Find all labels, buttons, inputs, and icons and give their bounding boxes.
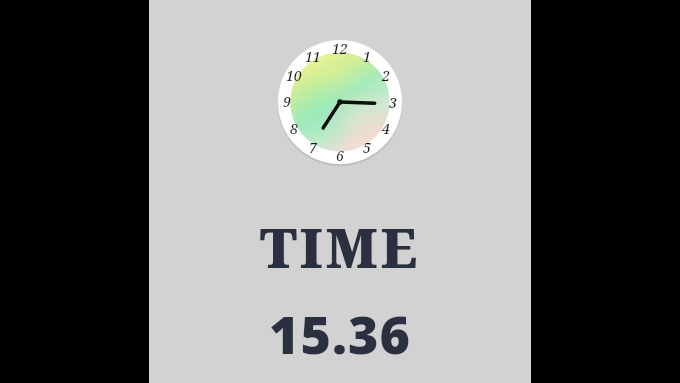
staticText: 7: [309, 138, 317, 157]
staticText: 10: [286, 66, 302, 85]
staticText: 2: [382, 66, 390, 85]
staticText: 11: [305, 47, 321, 66]
button[interactable]: Analog clock showing 15:36: [149, 0, 531, 383]
staticText: TIME: [149, 210, 531, 284]
button[interactable]: Analog clock showing 15:36: [278, 40, 402, 164]
staticText: 1: [363, 47, 371, 66]
staticText: 5: [363, 138, 371, 157]
staticText: 12: [332, 39, 348, 58]
staticText: 8: [290, 119, 298, 138]
staticText: 6: [336, 146, 344, 165]
staticText: 15.36: [149, 298, 531, 369]
staticText: 3: [389, 93, 397, 112]
staticText: 9: [283, 92, 291, 111]
staticText: 4: [382, 119, 390, 138]
